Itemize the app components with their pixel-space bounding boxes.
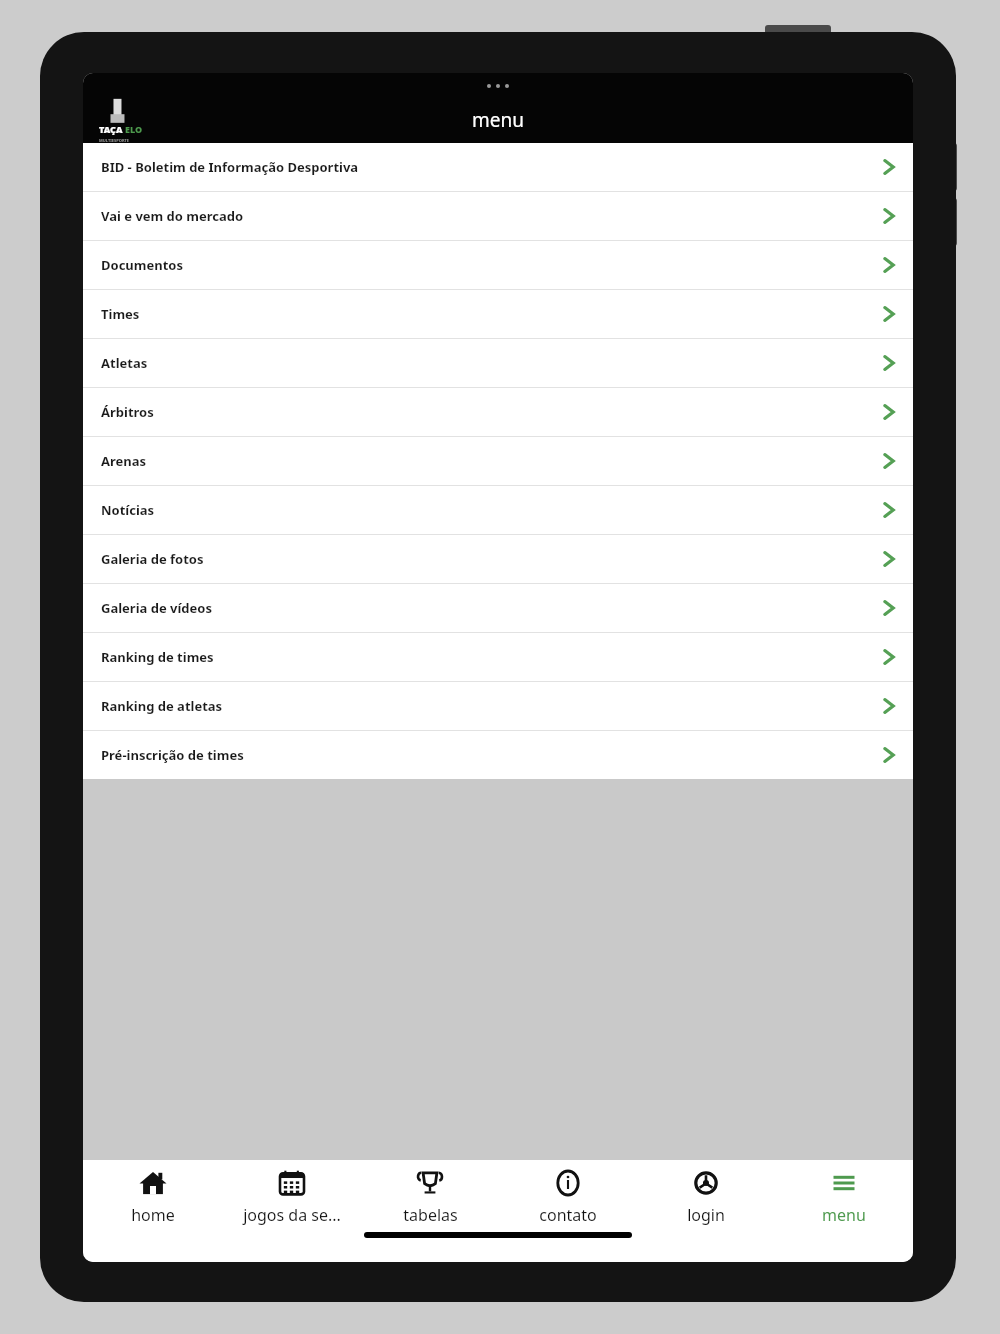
staticText: Notícias	[101, 501, 883, 519]
button[interactable]: BID - Boletim de Informação Desportiva	[83, 143, 913, 191]
button[interactable]: Árbitros	[83, 388, 913, 436]
staticText: ELO	[125, 123, 143, 135]
button[interactable]: Menu	[775, 1160, 913, 1232]
staticText: tabelas	[403, 1204, 458, 1226]
button[interactable]: Jogos da semana	[222, 1160, 361, 1232]
other: Home	[138, 1168, 168, 1198]
staticText: Vai e vem do mercado	[101, 207, 883, 225]
staticText: MULTIESPORTE	[99, 138, 130, 143]
staticText: BID - Boletim de Informação Desportiva	[101, 158, 883, 176]
staticText: TAÇA	[99, 123, 123, 135]
button[interactable]: Galeria de fotos	[83, 535, 913, 583]
staticText: Pré-inscrição de times	[101, 746, 883, 764]
staticText: Arenas	[101, 452, 883, 470]
button[interactable]: Atletas	[83, 339, 913, 387]
button[interactable]: Documentos	[83, 241, 913, 289]
other: Login	[691, 1168, 721, 1198]
staticText: Atletas	[101, 354, 883, 372]
other: Tabelas	[415, 1168, 445, 1198]
staticText: Times	[101, 305, 883, 323]
staticText: Ranking de times	[101, 648, 883, 666]
staticText: menu	[472, 107, 524, 133]
staticText: jogos da se...	[243, 1204, 341, 1226]
staticText: contato	[539, 1204, 597, 1226]
button[interactable]: Contato	[499, 1160, 637, 1232]
button[interactable]: Arenas	[83, 437, 913, 485]
button[interactable]: Galeria de vídeos	[83, 584, 913, 632]
staticText: home	[131, 1204, 175, 1226]
staticText: Ranking de atletas	[101, 697, 883, 715]
staticText: Documentos	[101, 256, 883, 274]
button[interactable]: Tabelas	[361, 1160, 499, 1232]
button[interactable]: Login	[637, 1160, 775, 1232]
button[interactable]: Ranking de times	[83, 633, 913, 681]
button[interactable]: Times	[83, 290, 913, 338]
button[interactable]: Vai e vem do mercado	[83, 192, 913, 240]
button[interactable]: Pré-inscrição de times	[83, 731, 913, 779]
other: Menu	[829, 1168, 859, 1198]
other: Contato	[553, 1168, 583, 1198]
other: Jogos da semana	[277, 1168, 307, 1198]
button[interactable]: Home	[83, 1160, 222, 1232]
staticText: login	[687, 1204, 725, 1226]
button[interactable]: Ranking de atletas	[83, 682, 913, 730]
staticText: menu	[822, 1204, 866, 1226]
staticText: Galeria de fotos	[101, 550, 883, 568]
button[interactable]: Notícias	[83, 486, 913, 534]
staticText: Árbitros	[101, 403, 883, 421]
staticText: Galeria de vídeos	[101, 599, 883, 617]
